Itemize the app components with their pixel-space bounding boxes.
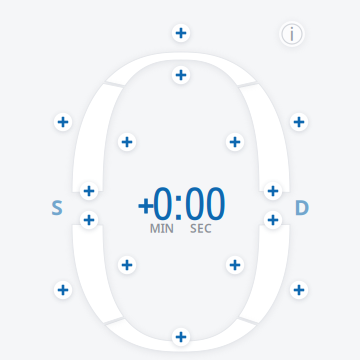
button[interactable]: Add tooth bbox=[170, 326, 192, 348]
button[interactable]: Add tooth bbox=[224, 254, 246, 276]
staticText: MIN bbox=[149, 220, 174, 236]
button[interactable]: Add tooth bbox=[52, 111, 74, 133]
staticText: 0:00 bbox=[152, 172, 226, 234]
button[interactable]: Add tooth bbox=[288, 279, 310, 301]
button[interactable]: Add tooth bbox=[288, 111, 310, 133]
staticText: i bbox=[289, 22, 294, 45]
button[interactable]: Add tooth bbox=[170, 64, 192, 86]
button[interactable]: Add tooth bbox=[262, 180, 284, 202]
staticText: D bbox=[294, 193, 310, 221]
button[interactable]: Add tooth bbox=[116, 254, 138, 276]
button[interactable]: Add tooth bbox=[52, 279, 74, 301]
button[interactable]: Add tooth bbox=[170, 22, 192, 44]
button[interactable]: Add tooth bbox=[262, 209, 284, 231]
staticText: SEC bbox=[190, 220, 212, 236]
button[interactable]: Add tooth bbox=[78, 180, 100, 202]
button[interactable]: Add tooth bbox=[78, 209, 100, 231]
button[interactable]: Add tooth bbox=[224, 131, 246, 153]
button[interactable]: Add tooth bbox=[116, 131, 138, 153]
button[interactable]: Info bbox=[277, 19, 307, 49]
staticText: S bbox=[51, 193, 63, 221]
